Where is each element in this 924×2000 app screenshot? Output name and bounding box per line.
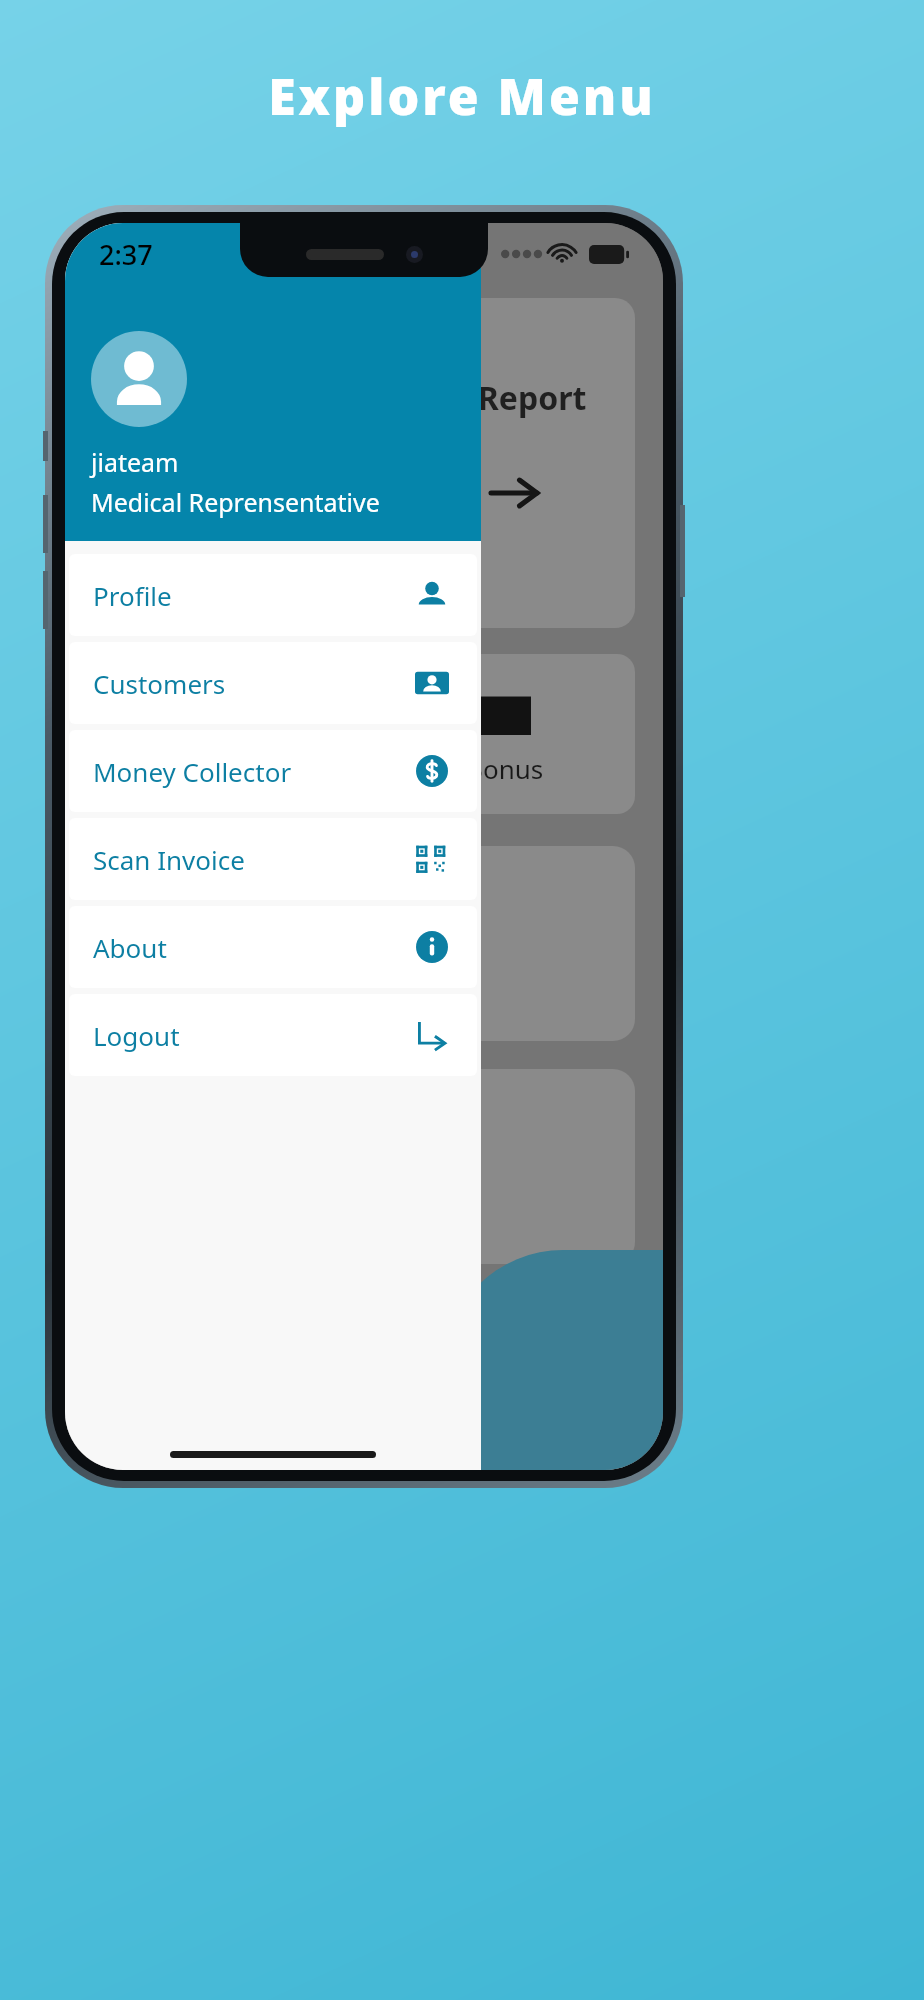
button[interactable]: Expense <box>185 846 635 1041</box>
staticText: Expense <box>172 750 275 785</box>
staticText: jiateam <box>91 445 179 479</box>
staticText: Sales Report <box>388 376 587 420</box>
button[interactable]: Call <box>185 1292 635 1470</box>
staticText: Bonus <box>466 751 544 786</box>
button[interactable]: Promotion <box>185 1069 635 1264</box>
button[interactable]: Profile <box>69 554 477 636</box>
button[interactable]: About <box>69 906 477 988</box>
button[interactable]: Money Collector <box>69 730 477 812</box>
staticText: Money Collector <box>93 754 292 789</box>
staticText: Explore Menu <box>268 62 656 130</box>
staticText: Profile <box>93 578 172 613</box>
staticText: Scan Invoice <box>93 842 245 877</box>
staticText: 2:37 <box>99 236 153 273</box>
staticText: Customers <box>93 666 226 701</box>
staticText: Logout <box>93 1018 180 1053</box>
staticText: 0 <box>217 692 232 727</box>
button[interactable]: Customers <box>69 642 477 724</box>
staticText: About <box>93 930 167 965</box>
staticText: Medical Reprensentative <box>91 485 380 519</box>
button[interactable]: Scan Invoice <box>69 818 477 900</box>
button[interactable]: Logout <box>69 994 477 1076</box>
